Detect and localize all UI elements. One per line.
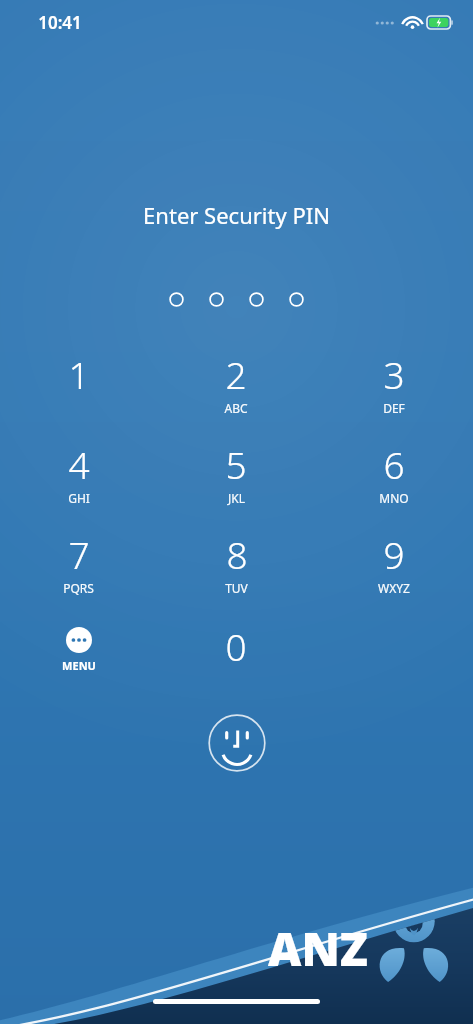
button[interactable]: Menu [0, 619, 157, 709]
staticText: WXYZ [378, 580, 410, 596]
button[interactable]: Face unlock [208, 714, 266, 772]
staticText: MNO [379, 490, 409, 506]
staticText: 1 [68, 349, 90, 399]
staticText: JKL [228, 490, 245, 506]
staticText: 3 [383, 349, 405, 399]
staticText: PQRS [63, 580, 94, 596]
staticText: 5 [225, 439, 247, 489]
staticText: TUV [225, 580, 248, 596]
staticText: 9 [383, 529, 405, 579]
button[interactable]: 6 [315, 439, 473, 529]
staticText: 4 [68, 439, 90, 489]
staticText: 8 [226, 529, 248, 579]
staticText: MENU [62, 658, 96, 673]
staticText: Enter Security PIN [143, 200, 330, 230]
button[interactable]: 3 [315, 349, 473, 439]
staticText: ANZ [268, 917, 368, 980]
staticText: 10:41 [38, 11, 82, 34]
staticText: 2 [225, 349, 247, 399]
staticText: 0 [225, 621, 247, 671]
button[interactable]: 4 [0, 439, 157, 529]
button[interactable]: 8 [157, 529, 315, 619]
staticText: 7 [68, 529, 90, 579]
staticText: DEF [383, 400, 405, 416]
button[interactable]: 2 [157, 349, 315, 439]
button[interactable]: 7 [0, 529, 157, 619]
staticText: ABC [224, 400, 248, 416]
staticText: 6 [383, 439, 405, 489]
staticText: GHI [68, 490, 90, 506]
button[interactable]: 9 [315, 529, 473, 619]
button[interactable]: 0 [157, 619, 315, 709]
button[interactable]: 5 [157, 439, 315, 529]
button[interactable]: 1 [0, 349, 157, 439]
